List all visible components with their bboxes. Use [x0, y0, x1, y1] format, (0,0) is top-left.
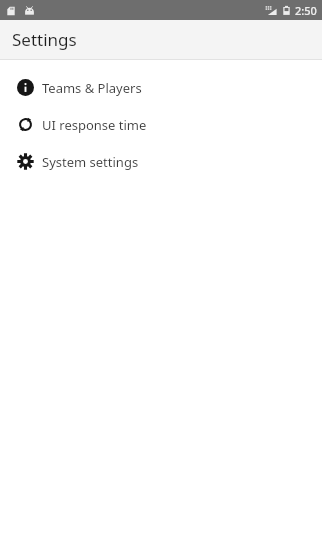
staticText: Teams & Players — [42, 79, 142, 97]
button[interactable]: System settings — [0, 143, 322, 180]
staticText: Settings — [12, 28, 77, 51]
button[interactable]: UI response time — [0, 106, 322, 143]
staticText: System settings — [42, 153, 139, 171]
staticText: UI response time — [42, 116, 147, 134]
staticText: 2:50 — [295, 3, 317, 18]
button[interactable]: Teams & Players — [0, 69, 322, 106]
